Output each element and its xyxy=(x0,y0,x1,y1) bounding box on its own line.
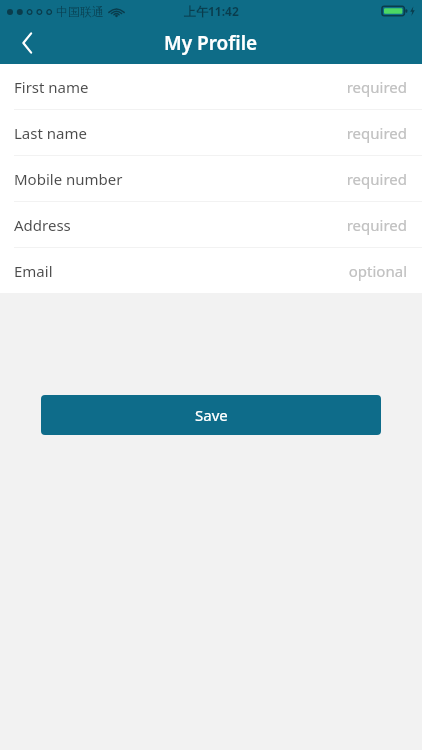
button[interactable]: Save xyxy=(41,395,381,435)
button[interactable]: Back xyxy=(0,22,54,64)
staticText: required xyxy=(346,215,407,235)
staticText: Save xyxy=(195,405,228,425)
staticText: required xyxy=(346,169,407,189)
staticText: First name xyxy=(14,77,89,97)
staticText: required xyxy=(346,77,407,97)
staticText: Email xyxy=(14,261,53,281)
staticText: optional xyxy=(348,261,407,281)
staticText: Address xyxy=(14,215,71,235)
button[interactable]: First name xyxy=(0,64,422,109)
staticText: required xyxy=(346,123,407,143)
button[interactable]: Address xyxy=(0,202,422,247)
button[interactable]: Mobile number xyxy=(0,156,422,201)
button[interactable]: Email xyxy=(0,248,422,293)
staticText: 中国联通 xyxy=(56,4,104,19)
staticText: 上午11:42 xyxy=(184,3,239,19)
staticText: Last name xyxy=(14,123,87,143)
staticText: Mobile number xyxy=(14,169,123,189)
staticText: My Profile xyxy=(164,30,258,56)
button[interactable]: Last name xyxy=(0,110,422,155)
